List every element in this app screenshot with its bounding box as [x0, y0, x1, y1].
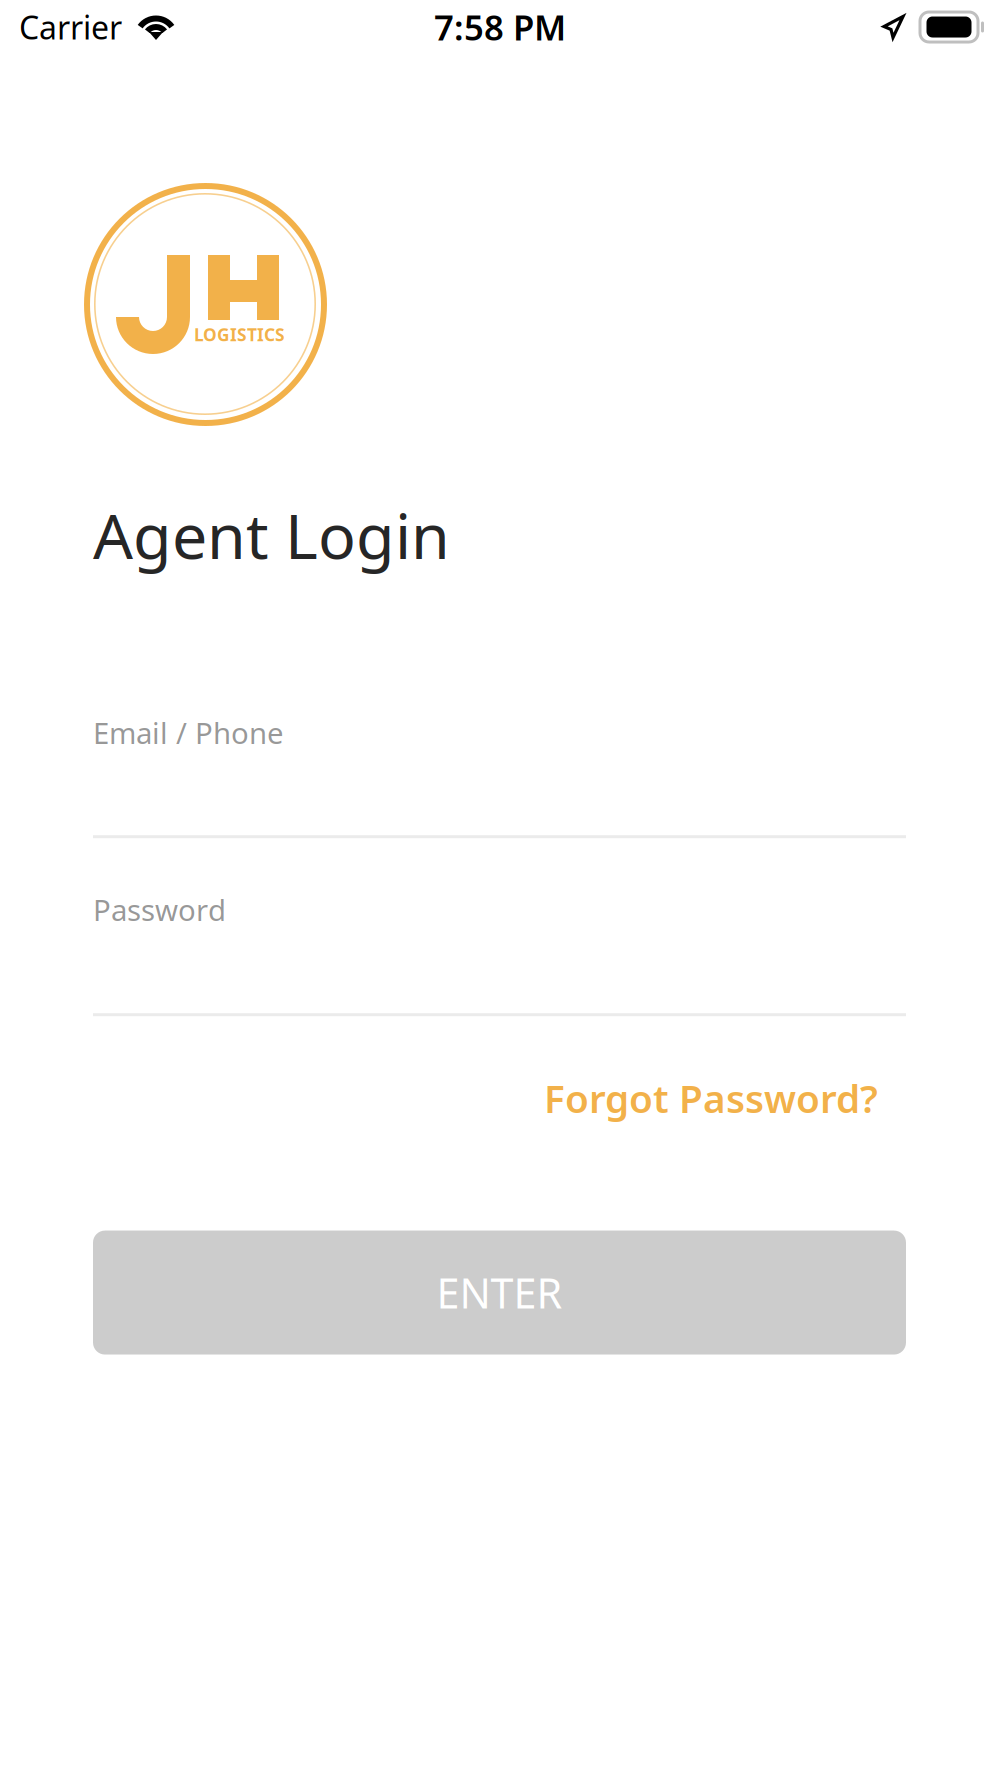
button[interactable]: Forgot Password? [93, 1072, 878, 1123]
staticText: Carrier [19, 6, 122, 48]
staticText: Forgot Password? [544, 1072, 878, 1123]
button[interactable]: ENTER [93, 1231, 906, 1355]
staticText: 7:58 PM [434, 4, 566, 50]
button[interactable]: Password [93, 890, 906, 1016]
staticText: Email / Phone [93, 713, 284, 752]
staticText: ENTER [436, 1265, 562, 1320]
staticText: Password [93, 890, 226, 929]
button[interactable]: Email / Phone [93, 713, 906, 838]
staticText: LOGISTICS [194, 323, 285, 346]
staticText: Agent Login [93, 493, 450, 576]
